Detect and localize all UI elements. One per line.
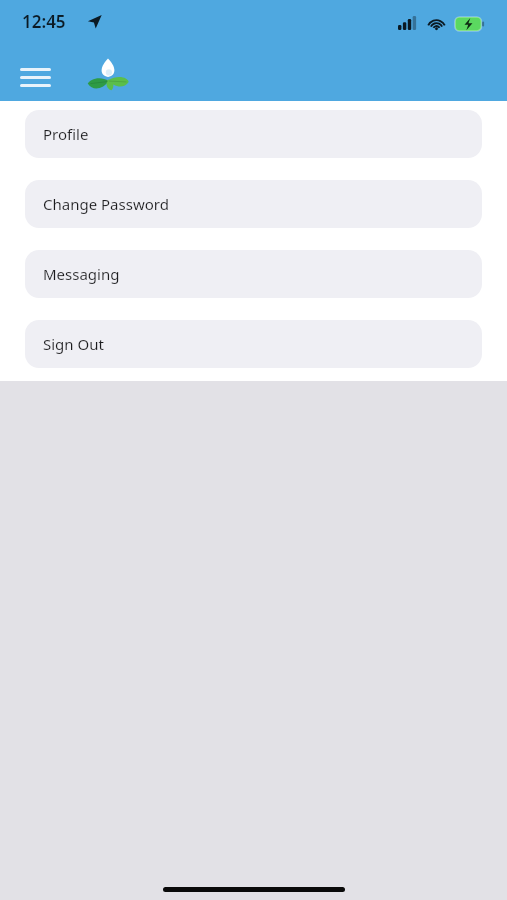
staticText: 12:45 [22,10,66,33]
staticText: Messaging [43,264,120,284]
button[interactable]: Messaging [25,250,482,298]
button[interactable]: Sign Out [25,320,482,368]
button[interactable]: Profile [25,110,482,158]
staticText: Sign Out [43,334,104,354]
button[interactable]: Open navigation menu [10,52,60,102]
staticText: Change Password [43,194,169,214]
staticText: Profile [43,124,89,144]
button[interactable]: Change Password [25,180,482,228]
